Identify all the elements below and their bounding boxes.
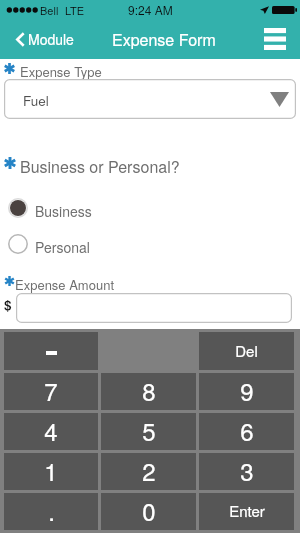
staticText: Expense Amount [15,275,114,294]
staticText: Expense Type [20,62,102,81]
button[interactable]: 2 [101,453,196,490]
button[interactable]: Enter [199,493,294,530]
button[interactable]: . [4,493,98,530]
button[interactable]: Del [199,332,294,370]
button[interactable]: Menu [254,20,300,58]
staticText: 4 [44,413,58,447]
button[interactable]: 6 [199,413,294,450]
button[interactable]: 3 [199,453,294,490]
staticText: Personal [35,237,90,257]
staticText: 1 [44,453,58,487]
button[interactable]: Personal [0,229,300,260]
staticText: Del [235,340,258,361]
staticText: Enter [229,500,265,521]
staticText: Business [35,201,92,221]
staticText: 0 [142,493,156,527]
button[interactable]: 5 [101,413,196,450]
staticText: 6 [240,413,254,447]
staticText: 9 [240,373,254,407]
staticText: 3 [240,453,254,487]
button[interactable]: 8 [101,373,196,410]
staticText: Module [28,29,74,49]
button[interactable] [4,332,98,370]
button[interactable]: 0 [101,493,196,530]
staticText: Expense Form [112,28,216,51]
button[interactable]: 4 [4,413,98,450]
staticText: 2 [142,453,156,487]
staticText: 9:24 AM [128,1,173,18]
button[interactable]: Module [0,21,84,57]
button[interactable] [16,293,292,323]
button[interactable]: Fuel [4,79,296,119]
staticText: Bell [40,2,59,18]
button[interactable]: 7 [4,373,98,410]
staticText: $ [4,295,12,314]
button[interactable]: 9 [199,373,294,410]
staticText: 7 [44,373,58,407]
staticText: LTE [65,2,85,18]
staticText: 5 [142,413,156,447]
button[interactable]: 1 [4,453,98,490]
staticText: 8 [142,373,156,407]
button[interactable]: Business [0,193,300,224]
staticText: . [48,493,55,527]
staticText: Fuel [23,91,49,110]
staticText: Business or Personal? [20,155,180,178]
